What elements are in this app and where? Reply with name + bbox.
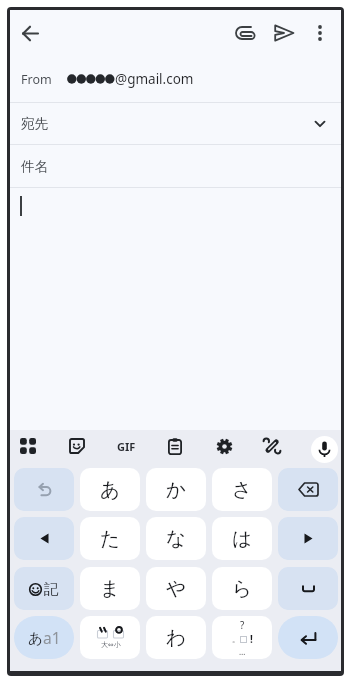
staticText: ? xyxy=(240,618,245,632)
button[interactable] xyxy=(14,517,74,560)
staticText: … xyxy=(239,646,246,657)
button[interactable]: た xyxy=(80,517,140,560)
button[interactable]: さ xyxy=(212,468,272,511)
staticText: GIF xyxy=(117,439,136,454)
staticText: あ xyxy=(28,629,43,647)
button[interactable] xyxy=(225,13,265,53)
button[interactable]: 記 xyxy=(14,567,74,610)
button[interactable] xyxy=(159,427,191,465)
staticText: な xyxy=(166,526,186,551)
button[interactable]: 件名 xyxy=(10,145,341,187)
button[interactable]: ら xyxy=(212,567,272,610)
staticText: 。 xyxy=(232,634,240,644)
button[interactable] xyxy=(208,427,240,465)
button[interactable] xyxy=(278,517,338,560)
button[interactable] xyxy=(14,468,74,511)
staticText: 記 xyxy=(44,580,59,598)
staticText: @gmail.com xyxy=(115,70,194,88)
button[interactable] xyxy=(278,468,338,511)
button[interactable]: や xyxy=(146,567,206,610)
staticText: From xyxy=(21,71,52,88)
staticText: 件名 xyxy=(21,158,48,175)
button[interactable]: わ xyxy=(146,616,206,659)
button[interactable] xyxy=(264,13,304,53)
button[interactable] xyxy=(311,436,338,463)
staticText: さ xyxy=(232,477,252,502)
button[interactable] xyxy=(302,13,338,53)
staticText: は xyxy=(232,526,252,551)
staticText: あ xyxy=(100,477,120,502)
button[interactable]: ? xyxy=(212,616,272,659)
button[interactable] xyxy=(278,567,338,610)
button[interactable]: 宛先 xyxy=(10,103,341,144)
button[interactable]: あ xyxy=(14,616,74,659)
staticText: か xyxy=(166,477,186,502)
button[interactable]: か xyxy=(146,468,206,511)
staticText: や xyxy=(166,576,186,601)
staticText: 宛先 xyxy=(21,115,48,132)
button[interactable]: From xyxy=(10,56,341,102)
button[interactable] xyxy=(278,616,338,659)
button[interactable] xyxy=(10,13,50,53)
staticText: わ xyxy=(166,625,186,650)
button[interactable]: ま xyxy=(80,567,140,610)
button[interactable]: 大⇔小 xyxy=(80,616,140,659)
button[interactable]: は xyxy=(212,517,272,560)
button[interactable] xyxy=(12,427,44,465)
button[interactable]: GIF xyxy=(110,427,142,465)
button[interactable] xyxy=(61,427,93,465)
staticText: 大⇔小 xyxy=(101,640,121,649)
staticText: ら xyxy=(232,576,252,601)
staticText: ま xyxy=(100,576,120,601)
button[interactable]: な xyxy=(146,517,206,560)
staticText: a1 xyxy=(43,627,61,648)
staticText: ! xyxy=(250,632,253,646)
staticText: た xyxy=(100,526,120,551)
button[interactable] xyxy=(256,427,288,465)
button[interactable]: あ xyxy=(80,468,140,511)
